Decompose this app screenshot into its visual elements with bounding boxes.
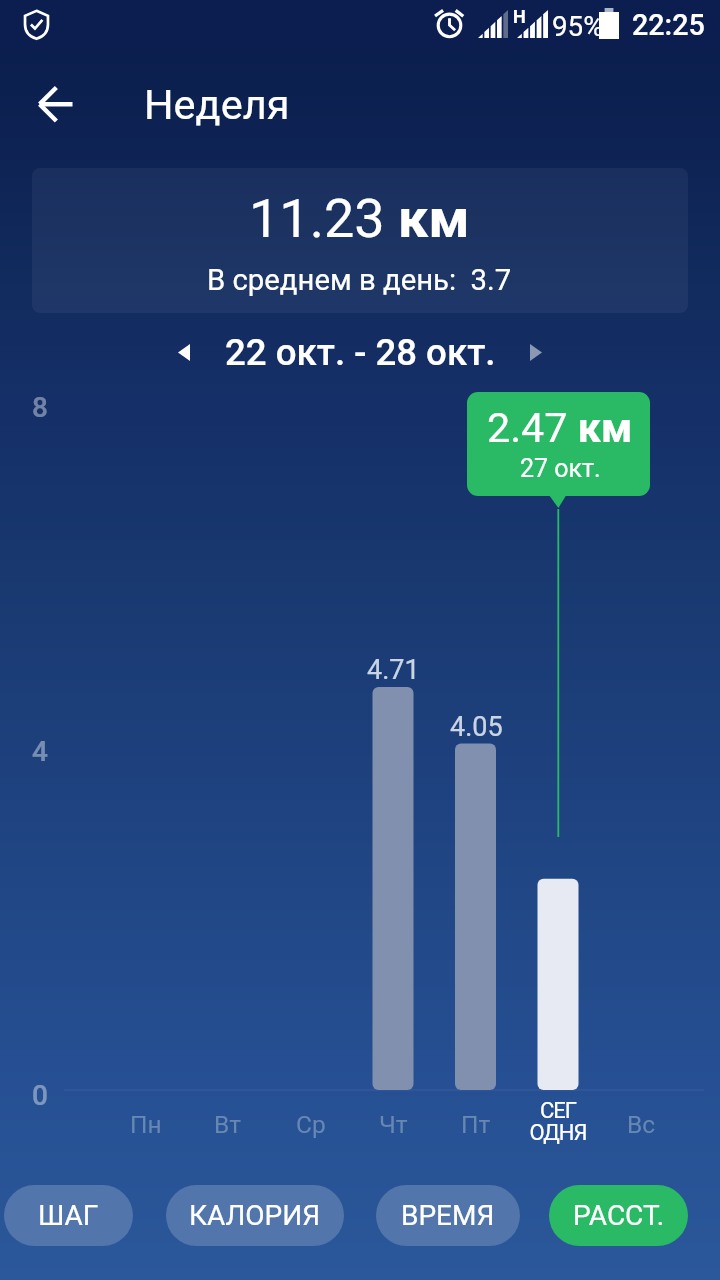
button[interactable]: Previous week: [158, 326, 210, 378]
button[interactable]: РАССТ.: [549, 1185, 688, 1246]
staticText: 4.05: [450, 711, 503, 743]
staticText: Ср: [296, 1110, 326, 1139]
staticText: Вт: [214, 1110, 242, 1139]
staticText: 2.47 км: [487, 404, 633, 452]
staticText: РАССТ.: [573, 1199, 665, 1232]
button[interactable]: Back: [25, 73, 87, 135]
staticText: 4.71: [367, 654, 420, 686]
staticText: H: [513, 6, 526, 27]
staticText: Вс: [627, 1110, 656, 1139]
staticText: Чт: [379, 1110, 408, 1139]
staticText: 22 окт. - 28 окт.: [225, 331, 496, 374]
staticText: Пт: [461, 1110, 491, 1139]
staticText: В среднем в день: 3.7: [207, 263, 512, 297]
staticText: ВРЕМЯ: [401, 1199, 495, 1232]
staticText: 95%: [552, 10, 604, 43]
staticText: ШАГ: [38, 1199, 99, 1232]
staticText: 22:25: [632, 8, 705, 42]
staticText: 11.23 км: [249, 187, 470, 250]
staticText: 8: [32, 391, 48, 424]
button[interactable]: ШАГ: [4, 1185, 133, 1246]
staticText: 4: [32, 735, 48, 768]
button[interactable]: [467, 392, 650, 496]
staticText: 27 окт.: [520, 454, 601, 483]
staticText: СЕГ ОДНЯ: [529, 1098, 587, 1145]
staticText: 0: [32, 1079, 48, 1112]
button[interactable]: Next week: [510, 326, 562, 378]
staticText: КАЛОРИЯ: [189, 1199, 321, 1232]
staticText: Неделя: [144, 80, 290, 129]
button[interactable]: ВРЕМЯ: [376, 1185, 520, 1246]
button[interactable]: [32, 168, 688, 313]
staticText: Пн: [130, 1110, 162, 1139]
button[interactable]: КАЛОРИЯ: [166, 1185, 344, 1246]
